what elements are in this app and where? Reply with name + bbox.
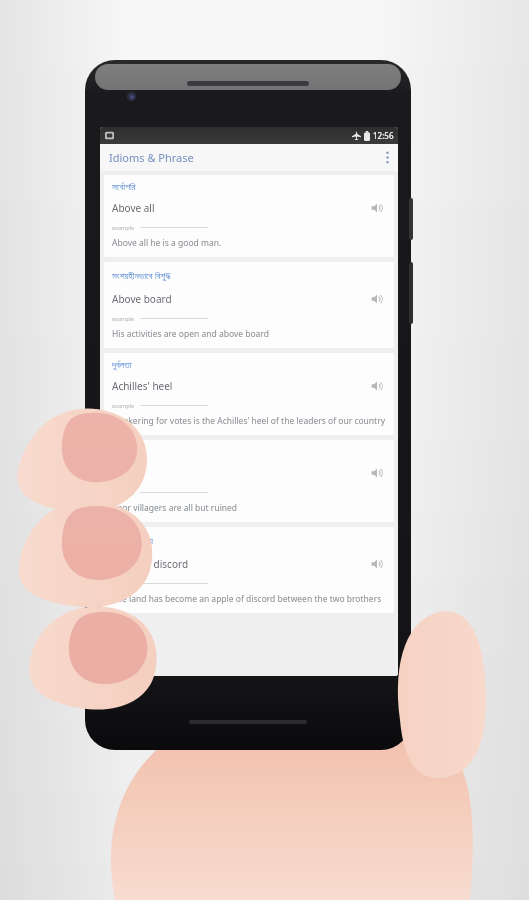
button[interactable]: More options <box>376 144 398 171</box>
staticText: বিরোধের বিষয় <box>112 534 153 547</box>
staticText: Above all he is a good man. <box>112 237 222 249</box>
staticText: Achilles' heel <box>112 379 366 393</box>
staticText: সর্বোপরি <box>112 182 136 191</box>
staticText: Poor villagers are all but ruined <box>112 502 238 514</box>
staticText: example <box>112 315 135 322</box>
button[interactable]: Play pronunciation <box>366 288 388 310</box>
staticText: All but <box>112 466 366 480</box>
staticText: example <box>112 489 135 496</box>
staticText: example <box>112 402 135 409</box>
button[interactable]: Play pronunciation <box>366 553 388 575</box>
button[interactable]: Play pronunciation <box>366 375 388 397</box>
staticText: সংশয়হীনভাবে বিশুদ্ধ <box>112 269 171 282</box>
staticText: The land has become an apple of discord … <box>112 593 382 605</box>
button[interactable]: সংশয়হীনভাবে বিশুদ্ধ <box>104 262 394 348</box>
staticText: Hankering for votes is the Achilles' hee… <box>112 415 386 427</box>
staticText: Above all <box>112 201 366 215</box>
staticText: example <box>112 224 135 231</box>
button[interactable]: বিরোধের বিষয় <box>104 527 394 613</box>
staticText: দুর্বলতা <box>112 360 132 369</box>
staticText: Idioms & Phrase <box>109 150 194 165</box>
staticText: His activities are open and above board <box>112 328 269 340</box>
button[interactable]: দুর্বলতা <box>104 353 394 435</box>
button[interactable]: Play pronunciation <box>366 462 388 484</box>
button[interactable]: প্রায় <box>104 440 394 522</box>
button[interactable]: সর্বোপরি <box>104 175 394 257</box>
button[interactable]: Play pronunciation <box>366 197 388 219</box>
staticText: 12:56 <box>373 130 394 141</box>
staticText: Apple of discord <box>112 557 366 571</box>
staticText: Above board <box>112 292 366 306</box>
